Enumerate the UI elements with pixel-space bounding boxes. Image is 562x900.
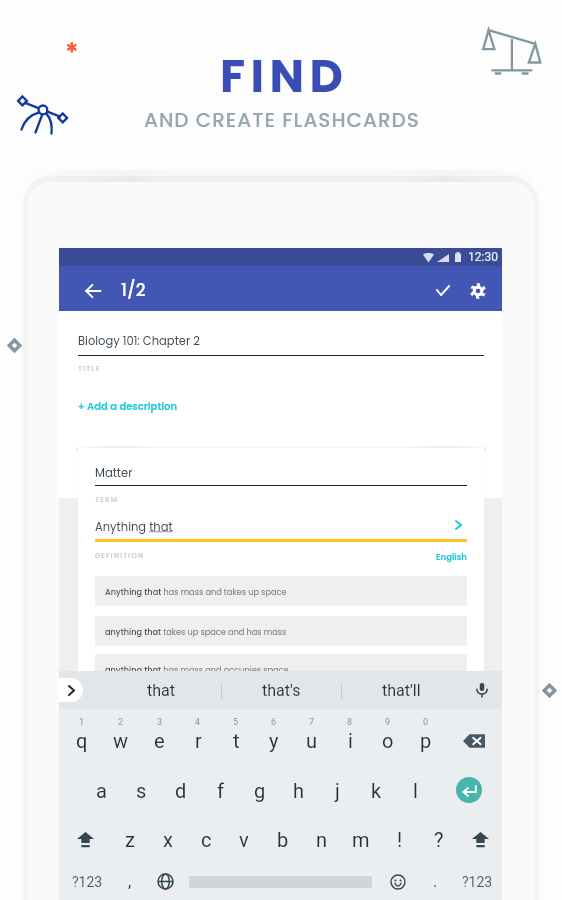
staticText: FIND [220, 44, 349, 108]
button[interactable]: anything that has mass and occupies spac… [95, 654, 467, 684]
staticText: t [233, 729, 240, 752]
button[interactable]: Enter [435, 764, 502, 816]
staticText: that'll [382, 681, 421, 700]
staticText: TERM [95, 495, 119, 505]
staticText: Biology 101: Chapter 2 [78, 333, 200, 349]
button[interactable]: More suggestions [59, 678, 83, 702]
button[interactable]: that'll [342, 671, 461, 709]
staticText: . [433, 872, 438, 891]
button[interactable]: 9 [369, 709, 407, 764]
button[interactable]: a [81, 764, 121, 816]
staticText: o [382, 729, 394, 752]
staticText: anything that takes up space and has mas… [105, 626, 287, 637]
button[interactable]: ! [380, 816, 419, 863]
button[interactable]: 7 [293, 709, 331, 764]
staticText: a [96, 779, 107, 802]
staticText: AND CREATE FLASHCARDS [144, 106, 420, 134]
button[interactable]: Backspace [445, 709, 502, 764]
staticText: ? [434, 828, 444, 851]
staticText: m [352, 828, 370, 851]
staticText: 4 [195, 717, 201, 728]
button[interactable]: x [149, 816, 187, 863]
staticText: 3 [157, 717, 163, 728]
staticText: 8 [347, 717, 353, 728]
button[interactable]: l [396, 764, 435, 816]
button[interactable]: 8 [331, 709, 369, 764]
button[interactable]: 3 [140, 709, 179, 764]
staticText: x [163, 828, 173, 851]
button[interactable]: anything that takes up space and has mas… [95, 616, 467, 646]
staticText: g [254, 779, 266, 802]
button[interactable]: Back [70, 268, 116, 313]
button[interactable]: k [357, 764, 396, 816]
button[interactable]: 2 [101, 709, 140, 764]
button[interactable]: m [341, 816, 380, 863]
button[interactable]: Anything that has mass and takes up spac… [95, 576, 467, 606]
staticText: 1/2 [121, 278, 146, 302]
staticText: + Add a description [78, 399, 178, 413]
staticText: j [335, 779, 340, 802]
button[interactable]: Space [185, 863, 375, 900]
staticText: Anything that has mass and takes up spac… [105, 586, 287, 597]
staticText: b [277, 828, 289, 851]
staticText: s [136, 779, 147, 802]
staticText: n [316, 828, 328, 851]
button[interactable]: v [225, 816, 263, 863]
staticText: k [371, 779, 382, 802]
button[interactable]: z [111, 816, 149, 863]
staticText: Matter [95, 465, 133, 481]
button[interactable]: b [263, 816, 302, 863]
staticText: p [420, 729, 432, 752]
button[interactable]: Voice input [461, 671, 502, 709]
staticText: that [147, 681, 175, 700]
button[interactable]: ?123 [63, 863, 111, 900]
button[interactable]: that's [222, 671, 341, 709]
button[interactable]: 6 [255, 709, 293, 764]
button[interactable]: g [240, 764, 279, 816]
staticText: English [436, 551, 467, 563]
button[interactable]: ? [419, 816, 458, 863]
staticText: h [293, 779, 305, 802]
button[interactable]: f [201, 764, 240, 816]
staticText: 9 [385, 717, 391, 728]
button[interactable]: + Add a description [78, 399, 178, 413]
button[interactable]: n [302, 816, 341, 863]
staticText: d [175, 779, 187, 802]
button[interactable]: c [187, 816, 225, 863]
button[interactable]: Emoji [379, 863, 417, 900]
staticText: u [306, 729, 318, 752]
staticText: ?123 [72, 874, 103, 890]
staticText: that's [262, 681, 301, 700]
staticText: 6 [271, 717, 277, 728]
staticText: 5 [233, 717, 239, 728]
button[interactable]: Shift [59, 816, 111, 863]
button[interactable]: Settings [455, 268, 501, 313]
button[interactable]: , [114, 863, 145, 900]
staticText: 12:30 [468, 250, 498, 264]
staticText: 7 [309, 717, 315, 728]
button[interactable]: d [161, 764, 201, 816]
staticText: 0 [423, 717, 429, 728]
button[interactable]: h [279, 764, 318, 816]
staticText: anything that has mass and occupies spac… [105, 664, 289, 675]
staticText: Anything that [95, 519, 173, 535]
button[interactable]: 1 [62, 709, 101, 764]
staticText: v [239, 828, 249, 851]
button[interactable]: Change language [146, 863, 184, 900]
staticText: 2 [118, 717, 124, 728]
button[interactable]: Shift [458, 816, 502, 863]
button[interactable]: s [121, 764, 161, 816]
staticText: y [269, 729, 279, 752]
button[interactable]: Done [420, 268, 466, 313]
button[interactable]: . [418, 863, 452, 900]
staticText: ! [397, 828, 403, 851]
button[interactable]: 0 [407, 709, 445, 764]
button[interactable]: that [101, 671, 221, 709]
button[interactable]: 5 [217, 709, 255, 764]
button[interactable]: ?123 [453, 863, 501, 900]
button[interactable]: 4 [179, 709, 217, 764]
button[interactable]: j [318, 764, 357, 816]
staticText: , [128, 872, 132, 891]
staticText: 1 [79, 717, 85, 728]
button[interactable]: Open [445, 512, 471, 538]
